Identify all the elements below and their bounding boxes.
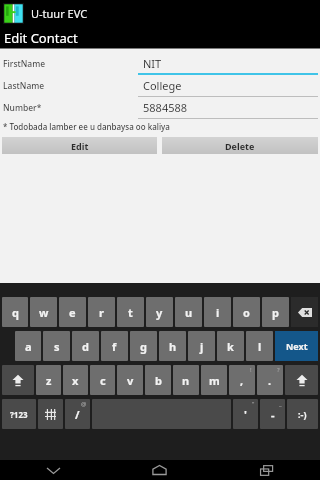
button[interactable]: y	[146, 297, 173, 327]
staticText: :-)	[298, 408, 307, 420]
staticText: LastName	[3, 80, 45, 92]
staticText: z	[46, 373, 52, 388]
button[interactable]: Shift	[2, 365, 34, 395]
button[interactable]: "	[233, 399, 258, 429]
button[interactable]: v	[117, 365, 143, 395]
staticText: m	[209, 373, 220, 388]
button[interactable]: f	[101, 331, 128, 361]
button[interactable]: NIT	[138, 53, 320, 75]
button[interactable]: College	[138, 75, 320, 97]
staticText: t	[128, 305, 133, 320]
staticText: _	[279, 400, 282, 408]
staticText: d	[82, 339, 89, 354]
staticText: 5884588	[143, 100, 188, 115]
button[interactable]: s	[43, 331, 70, 361]
button[interactable]: m	[201, 365, 227, 395]
staticText: k	[227, 339, 234, 354]
staticText: i	[216, 305, 220, 320]
button[interactable]: ?123	[2, 399, 36, 429]
staticText: p	[272, 305, 279, 320]
button[interactable]: !	[229, 365, 255, 395]
staticText: * Todobada lamber ee u danbaysa oo kaliy…	[3, 121, 170, 132]
button[interactable]: ?	[257, 365, 283, 395]
button[interactable]: 5884588	[138, 97, 320, 119]
staticText: f	[112, 339, 117, 354]
staticText: ?	[277, 366, 280, 374]
button[interactable]: l	[246, 331, 273, 361]
button[interactable]: Back	[0, 460, 106, 480]
staticText: w	[39, 305, 49, 320]
button[interactable]: h	[159, 331, 186, 361]
staticText: @	[81, 400, 87, 408]
staticText: j	[200, 339, 204, 354]
staticText: l	[258, 339, 262, 354]
button[interactable]: t	[117, 297, 144, 327]
button[interactable]: k	[217, 331, 244, 361]
staticText: FirstName	[3, 58, 46, 70]
button[interactable]: z	[36, 365, 61, 395]
staticText: b	[155, 373, 162, 388]
staticText: r	[99, 305, 104, 320]
staticText: "	[252, 400, 255, 408]
button[interactable]: _	[260, 399, 285, 429]
staticText: College	[143, 78, 182, 93]
button[interactable]: e	[59, 297, 86, 327]
staticText: '	[244, 407, 247, 422]
button[interactable]: Home	[106, 460, 213, 480]
button[interactable]: Shift	[285, 365, 318, 395]
staticText: NIT	[143, 56, 162, 71]
button[interactable]: Backspace	[291, 297, 318, 327]
staticText: Delete	[225, 140, 255, 152]
button[interactable]: n	[173, 365, 199, 395]
staticText: h	[169, 339, 177, 354]
staticText: Edit	[71, 140, 89, 152]
staticText: ,	[240, 373, 244, 388]
staticText: s	[54, 339, 60, 354]
staticText: Number*	[3, 102, 42, 114]
staticText: Edit Contact	[4, 29, 78, 47]
button[interactable]: Recent apps	[213, 460, 320, 480]
button[interactable]: i	[204, 297, 231, 327]
staticText: /	[75, 407, 80, 422]
staticText: g	[140, 339, 147, 354]
staticText: n	[182, 373, 190, 388]
staticText: y	[156, 305, 163, 320]
button[interactable]: p	[262, 297, 289, 327]
button[interactable]: r	[88, 297, 115, 327]
staticText: !	[250, 366, 252, 374]
button[interactable]: x	[63, 365, 88, 395]
button[interactable]: Input settings	[38, 399, 63, 429]
button[interactable]: b	[145, 365, 171, 395]
staticText: o	[243, 305, 250, 320]
staticText: Next	[286, 340, 308, 352]
button[interactable]: :-)	[287, 399, 318, 429]
button[interactable]: q	[2, 297, 28, 327]
button[interactable]: o	[233, 297, 260, 327]
button[interactable]: c	[90, 365, 115, 395]
staticText: q	[12, 305, 19, 320]
staticText: a	[25, 339, 32, 354]
button[interactable]: d	[72, 331, 99, 361]
button[interactable]: @	[65, 399, 90, 429]
staticText: U-tuur EVC	[31, 6, 88, 21]
staticText: u	[185, 305, 193, 320]
button[interactable]: j	[188, 331, 215, 361]
staticText: v	[127, 373, 134, 388]
button[interactable]: u	[175, 297, 202, 327]
button[interactable]: Delete	[162, 137, 318, 154]
staticText: x	[72, 373, 79, 388]
button[interactable]: g	[130, 331, 157, 361]
staticText: .	[268, 373, 272, 388]
staticText: e	[69, 305, 76, 320]
staticText: ?123	[10, 409, 28, 420]
button[interactable]: w	[30, 297, 57, 327]
button[interactable]: Next	[275, 331, 318, 361]
button[interactable]: Edit	[2, 137, 157, 154]
staticText: c	[100, 373, 106, 388]
staticText: -	[271, 407, 275, 422]
button[interactable]: a	[15, 331, 41, 361]
